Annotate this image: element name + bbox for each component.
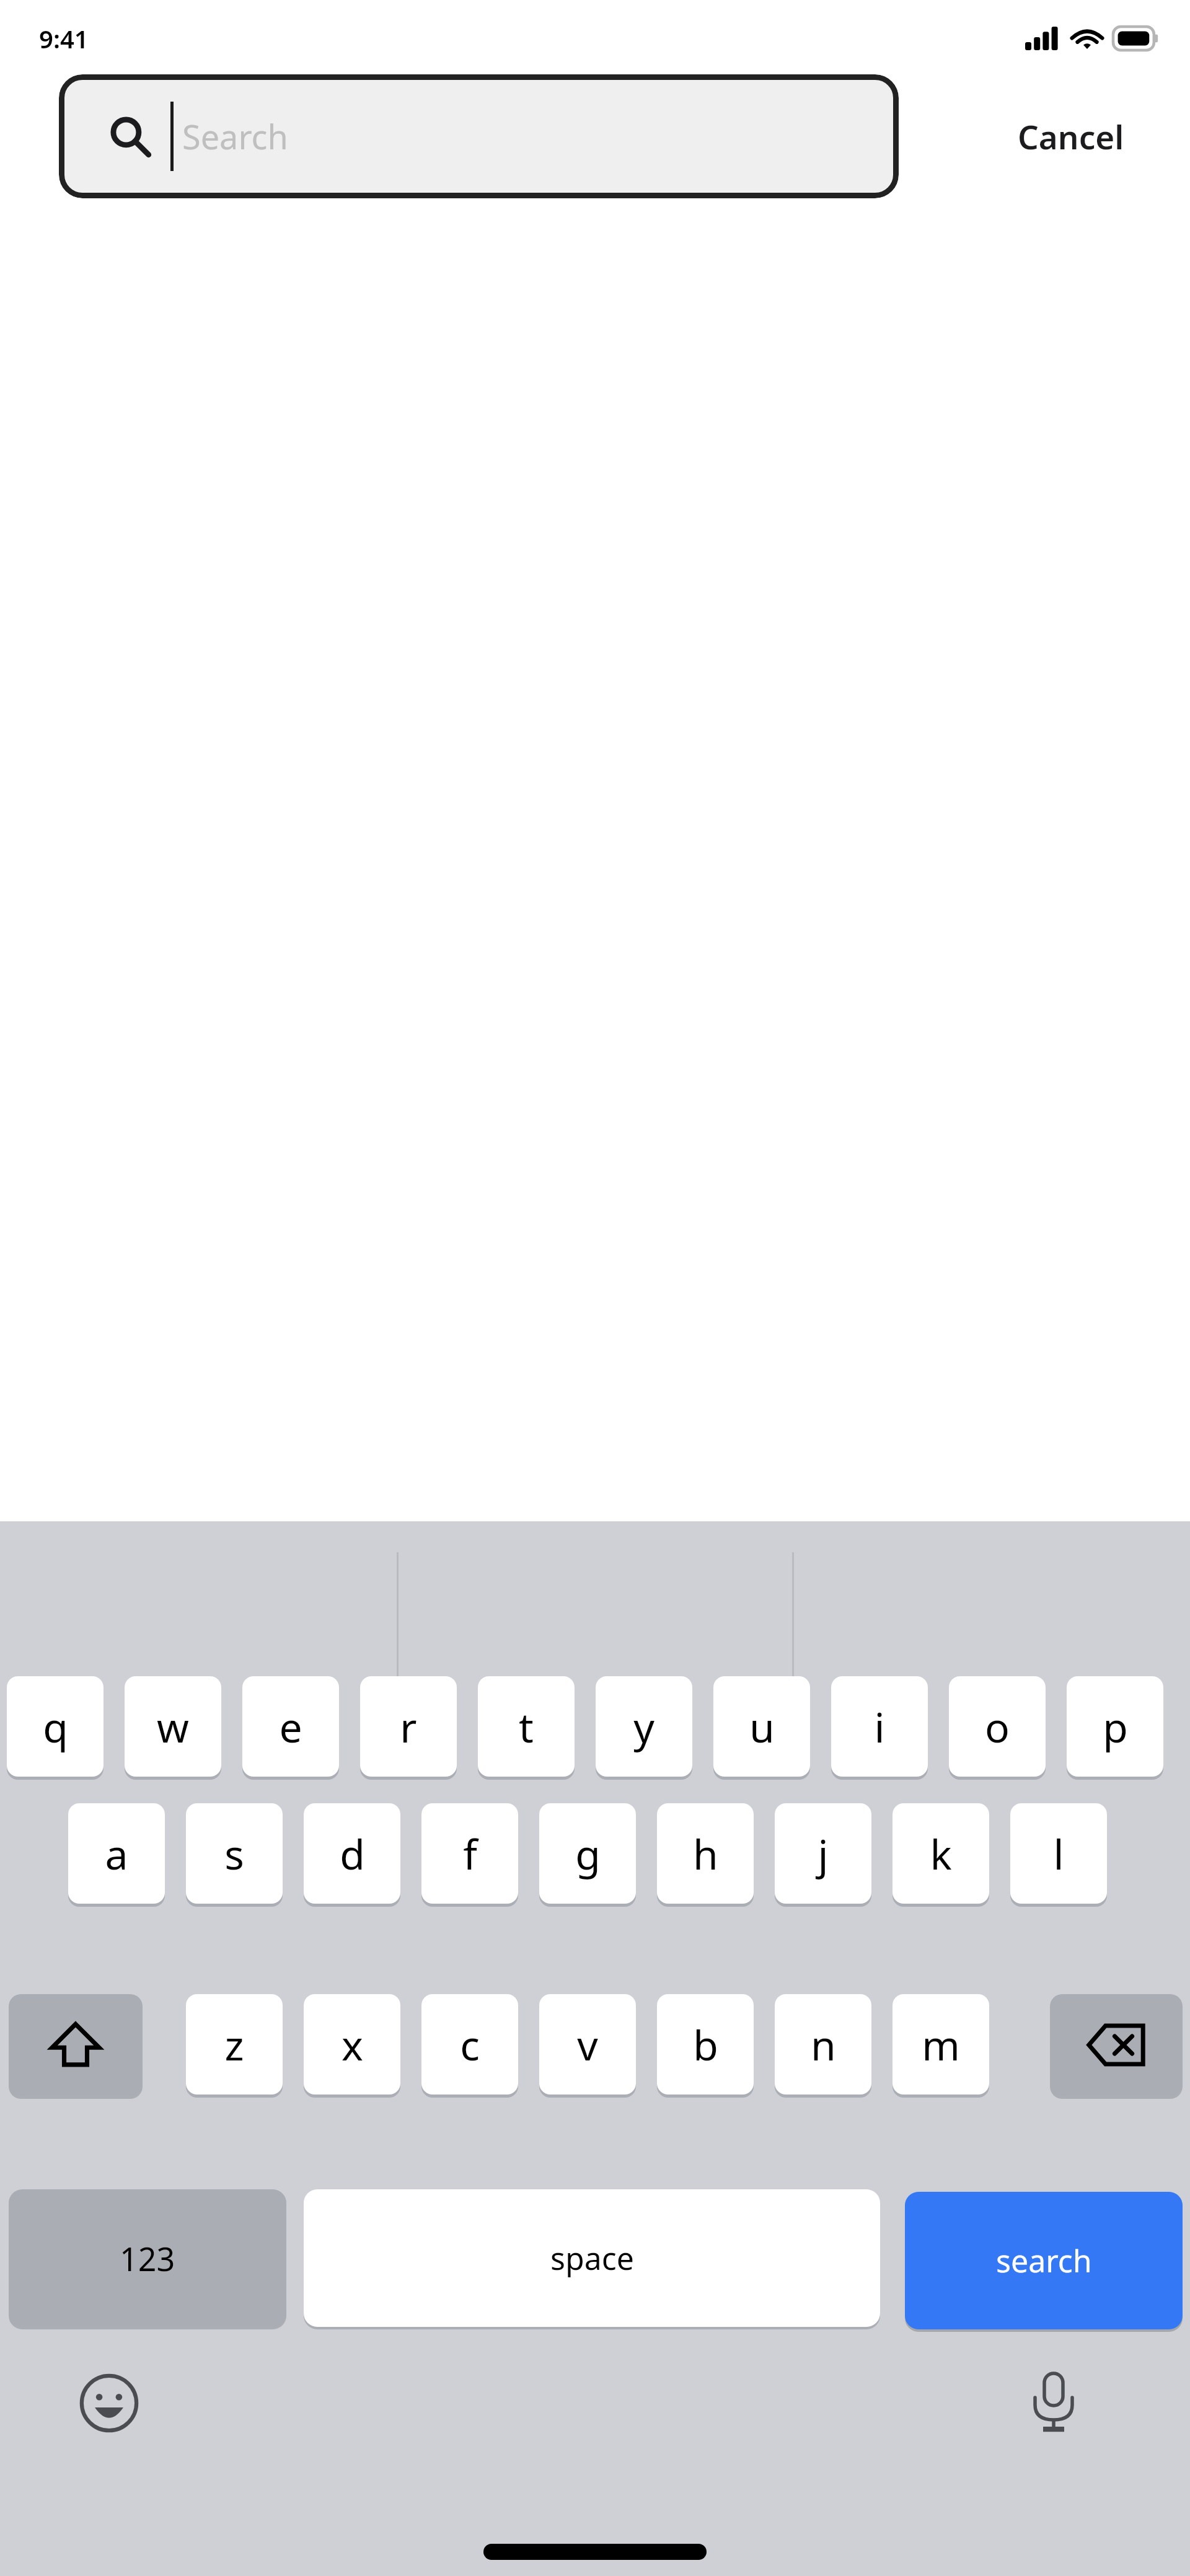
staticText: r — [400, 1699, 417, 1754]
button[interactable]: Dictation — [1023, 2370, 1085, 2432]
staticText: i — [874, 1699, 885, 1754]
button[interactable]: k — [892, 1803, 989, 1904]
button[interactable]: w — [125, 1676, 221, 1777]
button[interactable]: Cancel — [1008, 102, 1134, 171]
staticText: j — [818, 1826, 829, 1881]
button[interactable]: o — [949, 1676, 1046, 1777]
button[interactable]: z — [186, 1994, 283, 2095]
button[interactable]: t — [478, 1676, 575, 1777]
button[interactable]: u — [713, 1676, 810, 1777]
staticText: k — [930, 1826, 952, 1881]
button[interactable]: v — [539, 1994, 636, 2095]
staticText: l — [1053, 1826, 1064, 1881]
button[interactable]: Search — [59, 74, 899, 198]
staticText: 123 — [120, 2236, 175, 2280]
button[interactable]: Emoji keyboard — [79, 2373, 139, 2433]
staticText: u — [749, 1699, 775, 1754]
button[interactable]: y — [596, 1676, 692, 1777]
staticText: search — [996, 2240, 1092, 2282]
button[interactable]: search — [905, 2192, 1183, 2329]
staticText: x — [342, 2016, 363, 2072]
staticText: c — [460, 2016, 480, 2072]
button[interactable]: d — [304, 1803, 400, 1904]
staticText: y — [633, 1699, 654, 1754]
button[interactable]: h — [657, 1803, 754, 1904]
staticText: q — [43, 1699, 68, 1754]
button[interactable]: l — [1010, 1803, 1107, 1904]
staticText: f — [463, 1826, 477, 1881]
staticText: t — [519, 1699, 534, 1754]
button[interactable]: Shift — [9, 1994, 143, 2096]
button[interactable]: x — [304, 1994, 400, 2095]
staticText: h — [693, 1826, 718, 1881]
staticText: e — [279, 1699, 302, 1754]
staticText: Cancel — [1018, 114, 1124, 159]
button[interactable]: f — [421, 1803, 518, 1904]
staticText: space — [550, 2237, 634, 2279]
button[interactable]: s — [186, 1803, 283, 1904]
staticText: Search — [182, 113, 288, 159]
button[interactable]: a — [68, 1803, 165, 1904]
button[interactable]: c — [421, 1994, 518, 2095]
staticText: m — [922, 2016, 960, 2072]
staticText: 9:41 — [39, 22, 89, 55]
staticText: w — [157, 1699, 189, 1754]
staticText: s — [224, 1826, 244, 1881]
staticText: p — [1103, 1699, 1128, 1754]
button[interactable]: m — [892, 1994, 989, 2095]
button[interactable]: g — [539, 1803, 636, 1904]
button[interactable]: n — [775, 1994, 871, 2095]
staticText: a — [105, 1826, 128, 1881]
staticText: d — [340, 1826, 365, 1881]
staticText: n — [811, 2016, 836, 2072]
button[interactable]: r — [360, 1676, 457, 1777]
staticText: o — [985, 1699, 1010, 1754]
staticText: g — [575, 1826, 601, 1881]
button[interactable]: q — [7, 1676, 104, 1777]
button[interactable]: e — [242, 1676, 339, 1777]
button[interactable]: b — [657, 1994, 754, 2095]
button[interactable]: p — [1067, 1676, 1163, 1777]
staticText: z — [224, 2016, 244, 2072]
button[interactable]: 123 — [9, 2189, 286, 2327]
staticText: b — [693, 2016, 718, 2072]
button[interactable]: space — [304, 2189, 880, 2327]
staticText: v — [577, 2016, 598, 2072]
button[interactable]: Backspace — [1050, 1994, 1183, 2096]
button[interactable]: i — [831, 1676, 928, 1777]
button[interactable]: j — [775, 1803, 871, 1904]
